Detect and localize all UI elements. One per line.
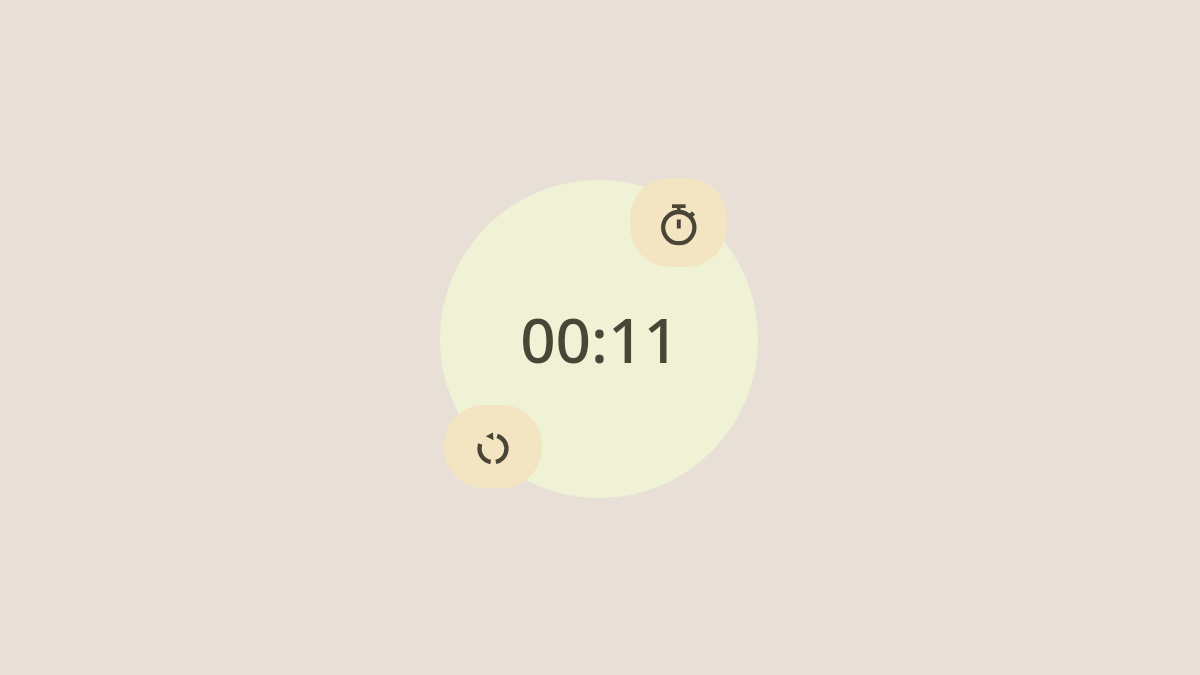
button[interactable]: Start stopwatch [630,178,727,267]
staticText: 00:11 [520,297,679,381]
button[interactable]: 00:11 [440,180,758,498]
button[interactable]: Reset timer [444,405,542,488]
